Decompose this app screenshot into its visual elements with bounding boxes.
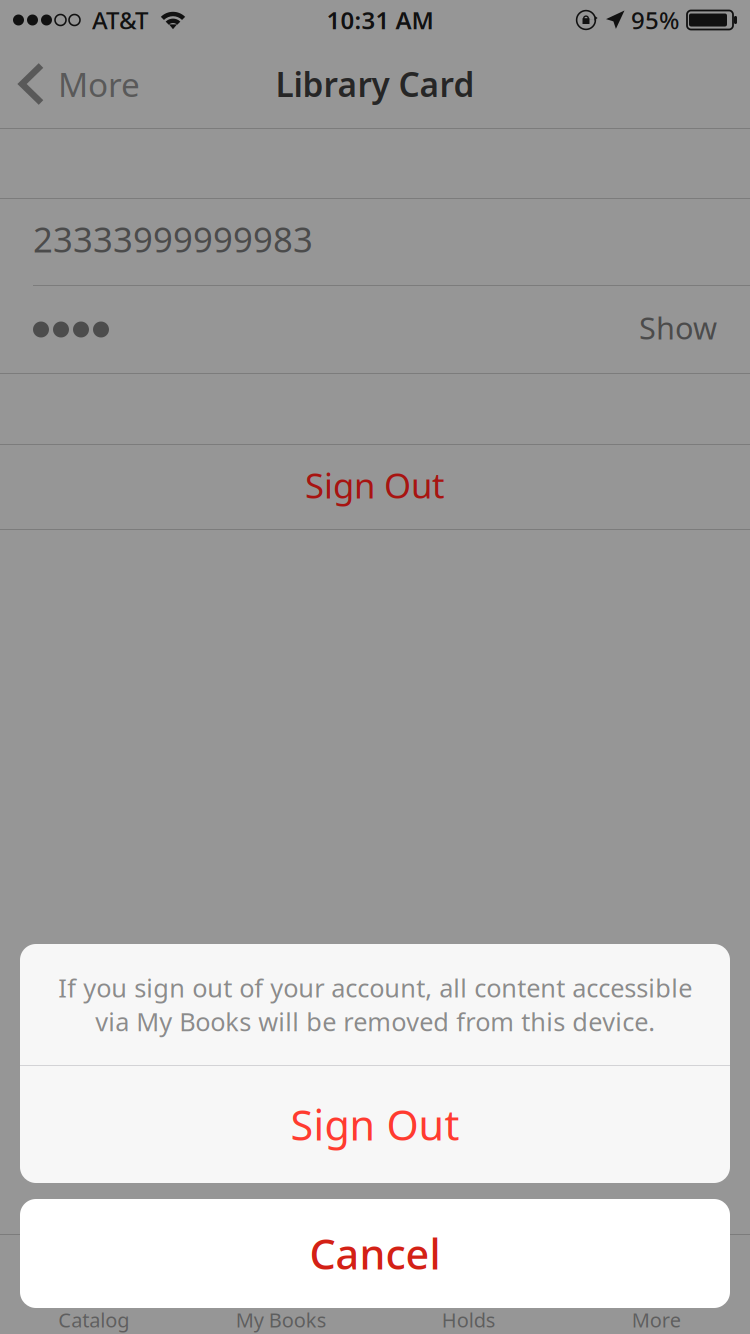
staticText: My Books [236, 1306, 327, 1333]
staticText: AT&T [92, 4, 148, 36]
staticText: Holds [442, 1306, 496, 1333]
button[interactable]: Back to More [0, 50, 152, 118]
staticText: Cancel [309, 1226, 440, 1281]
staticText: Show [639, 307, 717, 348]
button[interactable]: Holds [375, 1235, 562, 1334]
button[interactable]: Sign Out [0, 445, 750, 529]
button[interactable]: More [562, 1235, 750, 1334]
staticText: Sign Out [290, 1097, 459, 1152]
staticText: More [58, 62, 140, 106]
staticText: Sign Out [305, 462, 445, 508]
staticText: Catalog [58, 1306, 129, 1333]
button[interactable]: Catalog [0, 1235, 187, 1334]
staticText: 95% [631, 4, 679, 36]
staticText: 23333999999983 [33, 216, 313, 262]
staticText: More [632, 1306, 681, 1333]
button[interactable]: Show [0, 286, 750, 373]
staticText: If you sign out of your account, all con… [58, 971, 692, 1038]
button[interactable]: Sign Out [20, 1066, 730, 1183]
staticText: Library Card [275, 62, 474, 106]
staticText: 10:31 AM [326, 4, 433, 36]
button[interactable]: Cancel [20, 1199, 730, 1308]
button[interactable]: My Books [187, 1235, 375, 1334]
